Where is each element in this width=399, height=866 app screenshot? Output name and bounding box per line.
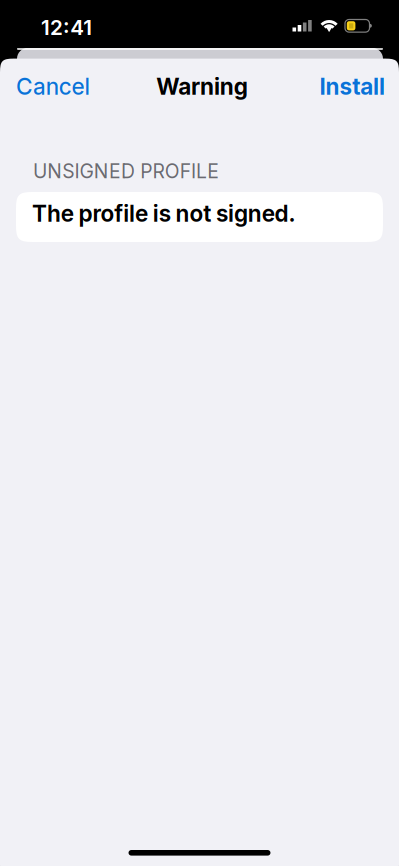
staticText: Cancel [16, 73, 90, 100]
staticText: UNSIGNED PROFILE [33, 160, 219, 183]
button[interactable]: Install [308, 59, 399, 115]
staticText: Warning [156, 73, 248, 100]
button[interactable]: Cancel [0, 59, 102, 115]
staticText: Install [320, 73, 385, 100]
staticText: 12:41 [41, 15, 92, 40]
staticText: The profile is not signed. [32, 200, 295, 227]
